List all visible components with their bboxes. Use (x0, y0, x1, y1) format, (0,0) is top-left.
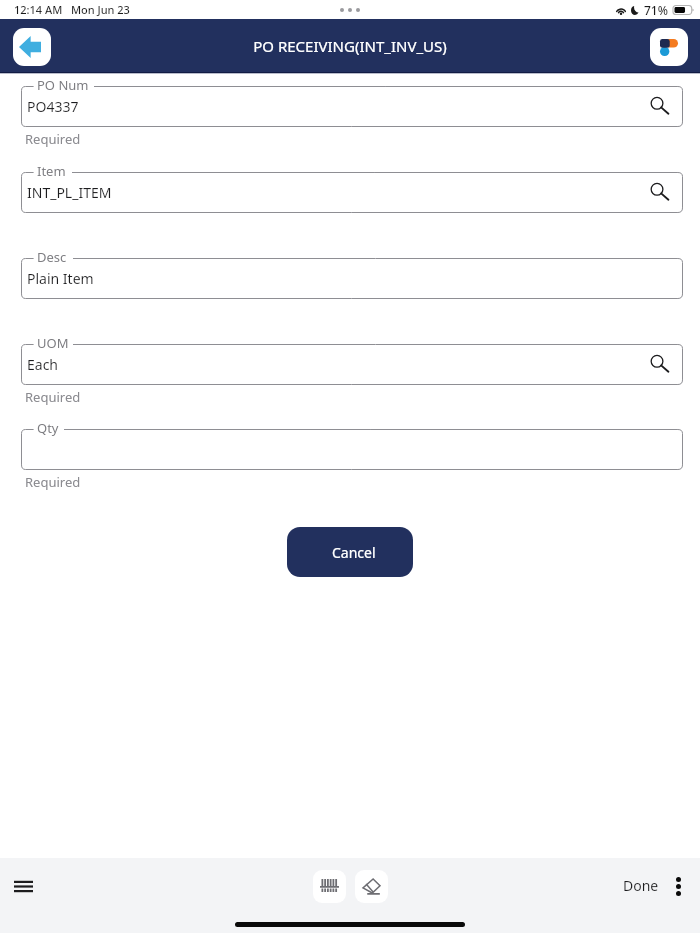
button[interactable]: Cancel (287, 527, 413, 577)
staticText: 71% (644, 2, 668, 18)
staticText: 12:14 AM Mon Jun 23 (14, 2, 130, 17)
button[interactable]: PO4337 (21, 86, 683, 127)
staticText: Required (25, 130, 81, 148)
staticText: Each (27, 355, 59, 374)
staticText: Plain Item (27, 269, 94, 288)
button[interactable]: Menu (6, 869, 40, 903)
staticText: Required (25, 473, 81, 491)
button[interactable]: Search PO Num (643, 87, 683, 127)
staticText: PO4337 (27, 97, 79, 116)
button[interactable]: Back (13, 28, 51, 66)
button[interactable]: More options (665, 873, 691, 899)
button[interactable]: Scan barcode (313, 870, 346, 903)
button[interactable]: Done (617, 870, 665, 901)
button[interactable]: Each (21, 344, 683, 385)
button[interactable]: App logo (650, 28, 688, 66)
button[interactable]: Plain Item (21, 258, 683, 299)
staticText: Item (37, 162, 66, 180)
staticText: Cancel (332, 543, 376, 562)
staticText: PO RECEIVING(INT_INV_US) (253, 36, 447, 56)
staticText: INT_PL_ITEM (27, 183, 112, 202)
staticText: Desc (37, 248, 67, 266)
staticText: Qty (37, 419, 59, 437)
button[interactable]: Erase (355, 870, 388, 903)
button[interactable]: INT_PL_ITEM (21, 172, 683, 213)
staticText: UOM (37, 334, 69, 352)
button[interactable]: Search UOM (643, 345, 683, 385)
button[interactable] (21, 429, 683, 470)
button[interactable]: Search Item (643, 173, 683, 213)
staticText: Required (25, 388, 81, 406)
staticText: Done (623, 876, 659, 895)
staticText: PO Num (37, 76, 89, 94)
